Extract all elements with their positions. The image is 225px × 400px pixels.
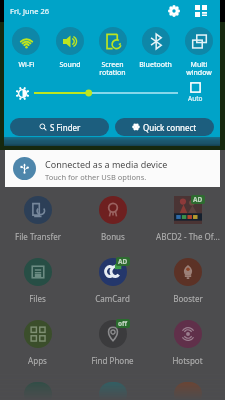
- button[interactable]: File Transfer: [0, 190, 75, 248]
- staticText: Wi-Fi: [18, 60, 35, 70]
- button[interactable]: Files: [0, 252, 75, 310]
- staticText: AD: [193, 195, 203, 204]
- button[interactable]: Hotspot: [150, 314, 225, 372]
- staticText: Hotspot: [172, 355, 203, 366]
- staticText: ABCD2 - The Of...: [156, 231, 220, 242]
- button[interactable]: Connected as a media device: [5, 150, 220, 187]
- button[interactable]: Quick connect: [115, 118, 214, 136]
- staticText: Quick connect: [143, 122, 197, 133]
- staticText: Connected as a media device: [45, 158, 168, 170]
- staticText: Bluetooth: [139, 60, 172, 70]
- staticText: Files: [29, 293, 46, 304]
- button[interactable]: AD: [150, 190, 225, 248]
- button[interactable]: Sound: [48, 21, 91, 77]
- staticText: off: [118, 319, 128, 328]
- button[interactable]: Booster: [150, 252, 225, 310]
- button[interactable]: AD: [75, 252, 150, 310]
- staticText: Sound: [59, 60, 81, 70]
- staticText: Find Phone: [91, 355, 134, 366]
- staticText: File Transfer: [15, 231, 61, 242]
- button[interactable]: off: [75, 314, 150, 372]
- staticText: Bonus: [101, 231, 125, 242]
- staticText: Touch for other USB options.: [45, 172, 147, 182]
- button[interactable]: Brightness: [15, 86, 29, 100]
- staticText: Screen rotation: [99, 60, 126, 77]
- button[interactable]: Apps: [0, 314, 75, 372]
- button[interactable]: Bluetooth: [134, 21, 177, 77]
- button[interactable]: Edit quick settings: [192, 2, 209, 19]
- button[interactable]: Auto: [183, 82, 207, 103]
- button[interactable]: S Finder: [10, 118, 109, 136]
- staticText: Multi window: [186, 60, 212, 77]
- staticText: Booster: [173, 293, 203, 304]
- staticText: AD: [118, 257, 128, 266]
- button[interactable]: Screen rotation: [91, 21, 134, 77]
- button[interactable]: Wi-Fi: [4, 21, 48, 77]
- staticText: S Finder: [50, 122, 81, 133]
- staticText: Auto: [188, 94, 203, 103]
- staticText: Apps: [28, 355, 47, 366]
- button[interactable]: Bonus: [75, 190, 150, 248]
- staticText: CamCard: [95, 293, 130, 304]
- button[interactable]: Multi window: [177, 21, 220, 77]
- button[interactable]: Settings: [165, 2, 182, 19]
- staticText: Fri, June 26: [10, 6, 49, 16]
